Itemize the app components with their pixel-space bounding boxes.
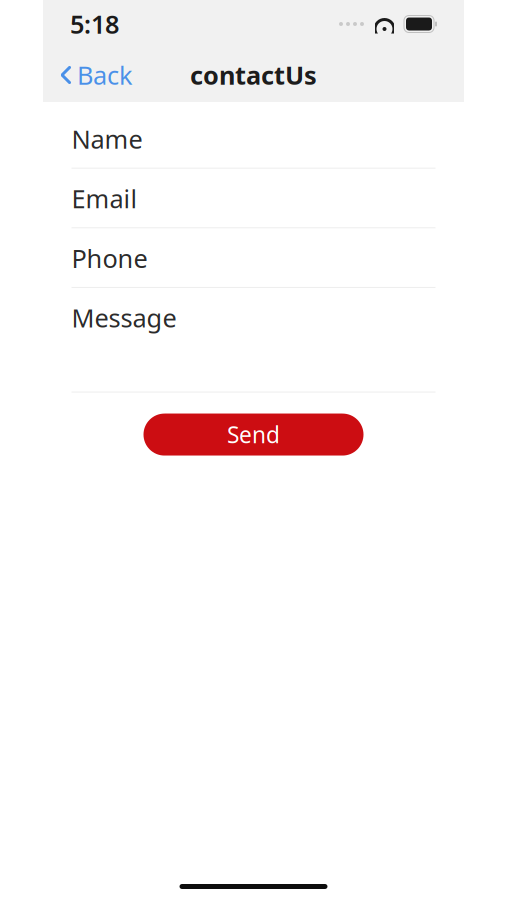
staticText: Message	[71, 301, 176, 334]
staticText: 5:18	[70, 7, 119, 41]
staticText: Back	[77, 58, 133, 92]
button[interactable]: Send	[143, 414, 363, 456]
staticText: Send	[227, 419, 280, 450]
button[interactable]: Email	[71, 169, 435, 228]
staticText: Phone	[71, 241, 147, 275]
staticText: Name	[71, 122, 142, 156]
button[interactable]: Message	[71, 288, 435, 392]
staticText: contactUs	[190, 58, 317, 92]
button[interactable]: Back	[48, 50, 145, 100]
staticText: Email	[71, 182, 137, 215]
button[interactable]: Name	[71, 102, 435, 169]
button[interactable]: Phone	[71, 228, 435, 288]
